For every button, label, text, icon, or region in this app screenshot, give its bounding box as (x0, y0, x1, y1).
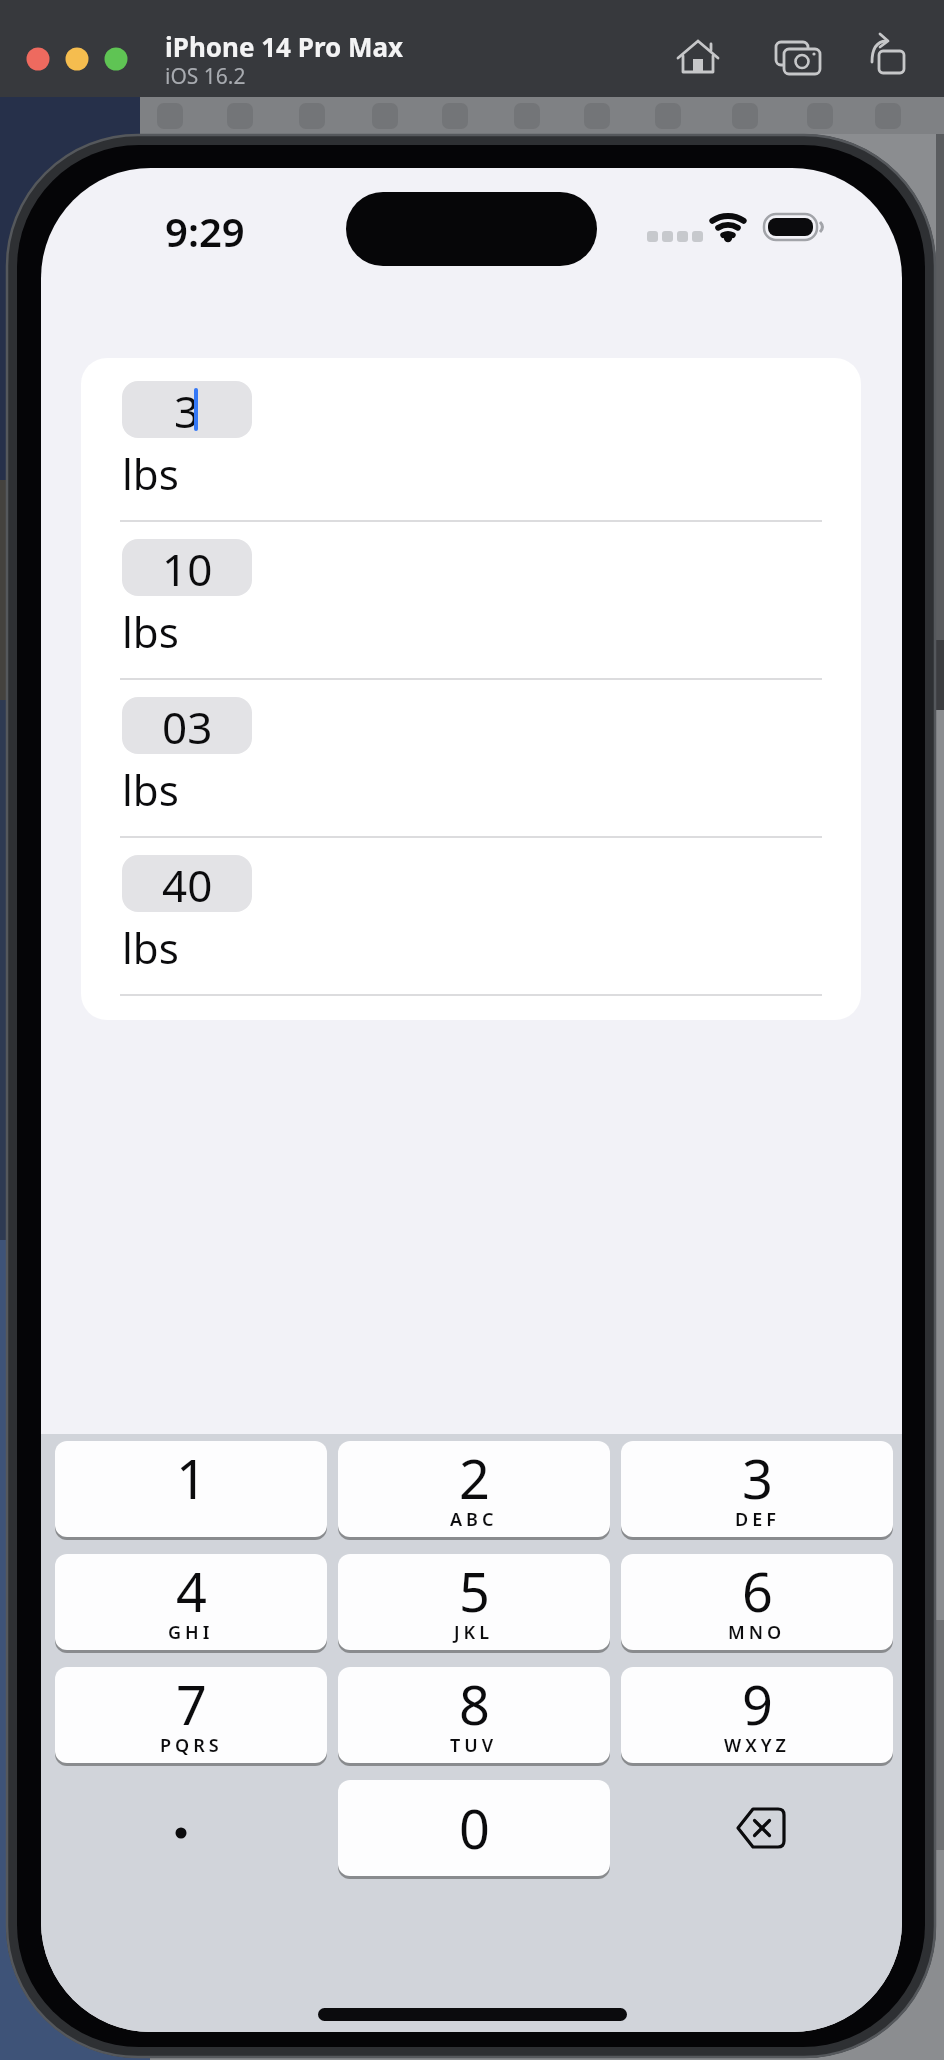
staticText: 7 (176, 1667, 207, 1735)
button[interactable]: 5 (338, 1554, 610, 1654)
staticText: 1 (176, 1441, 207, 1509)
staticText: TUV (450, 1733, 498, 1758)
staticText: lbs (122, 603, 179, 660)
staticText: 10 (162, 539, 213, 596)
button[interactable] (772, 32, 822, 82)
staticText: 9 (742, 1667, 773, 1735)
staticText: DEF (735, 1507, 780, 1532)
staticText: MNO (728, 1620, 786, 1645)
button[interactable] (672, 32, 722, 82)
staticText: iPhone 14 Pro Max (165, 29, 404, 64)
button[interactable]: 9 (621, 1667, 893, 1767)
button[interactable] (621, 1780, 893, 1880)
button[interactable]: 2 (338, 1441, 610, 1541)
staticText: GHI (168, 1620, 214, 1645)
button[interactable] (862, 32, 912, 82)
button[interactable] (55, 1780, 327, 1880)
button[interactable]: 6 (621, 1554, 893, 1654)
button[interactable]: 10 (122, 539, 252, 596)
staticText: WXYZ (724, 1733, 790, 1758)
button[interactable]: 4 (55, 1554, 327, 1654)
button[interactable]: 7 (55, 1667, 327, 1767)
button[interactable]: 40 (122, 855, 252, 912)
button[interactable]: 03 (122, 697, 252, 754)
staticText: 2 (459, 1441, 490, 1509)
button[interactable] (65, 47, 89, 71)
staticText: 6 (742, 1554, 773, 1622)
button[interactable]: 3 (122, 381, 252, 438)
staticText: lbs (122, 445, 179, 502)
button[interactable]: 0 (338, 1780, 610, 1880)
button[interactable]: 8 (338, 1667, 610, 1767)
staticText: lbs (122, 919, 179, 976)
staticText: 8 (459, 1667, 490, 1735)
staticText: PQRS (160, 1733, 223, 1758)
staticText: 03 (162, 697, 213, 754)
button[interactable] (104, 47, 128, 71)
staticText: lbs (122, 761, 179, 818)
staticText: 0 (459, 1791, 490, 1865)
staticText: 40 (162, 855, 213, 912)
staticText: 9:29 (165, 204, 245, 258)
staticText: 4 (176, 1554, 207, 1622)
staticText: ABC (450, 1507, 498, 1532)
staticText: iOS 16.2 (165, 62, 246, 91)
button[interactable] (26, 47, 50, 71)
button[interactable]: 3 (621, 1441, 893, 1541)
staticText: 3 (174, 381, 200, 438)
button[interactable]: 1 (55, 1441, 327, 1541)
staticText: 3 (742, 1441, 773, 1509)
staticText: JKL (454, 1620, 494, 1645)
staticText: 5 (459, 1554, 490, 1622)
